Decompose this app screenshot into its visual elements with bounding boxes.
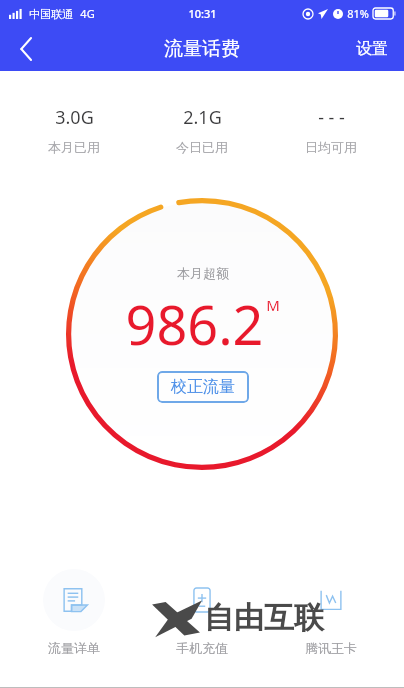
- staticText: 校正流量: [171, 377, 235, 397]
- staticText: 流量话费: [164, 37, 240, 61]
- button[interactable]: 手机充值: [147, 568, 257, 654]
- button[interactable]: Back: [0, 26, 52, 71]
- staticText: 自由互联: [204, 599, 324, 637]
- staticText: 10:31: [188, 6, 217, 21]
- button[interactable]: 腾讯王卡: [276, 568, 386, 654]
- button[interactable]: - - -: [276, 103, 386, 157]
- button[interactable]: 3.0G: [19, 103, 129, 157]
- staticText: 986.2: [125, 287, 264, 361]
- button[interactable]: 流量详单: [19, 568, 129, 654]
- staticText: 腾讯王卡: [305, 640, 357, 654]
- staticText: 设置: [356, 39, 388, 59]
- staticText: 3.0G: [55, 105, 94, 130]
- button[interactable]: 2.1G: [147, 103, 257, 157]
- staticText: 日均可用: [305, 139, 357, 155]
- staticText: M: [266, 295, 280, 315]
- staticText: - - -: [318, 105, 345, 130]
- button[interactable]: 校正流量: [157, 371, 249, 403]
- staticText: 本月已用: [48, 139, 100, 155]
- staticText: 本月超额: [177, 265, 229, 281]
- staticText: 81%: [347, 6, 369, 21]
- staticText: 流量详单: [48, 640, 100, 654]
- staticText: 4G: [80, 6, 95, 21]
- staticText: 手机充值: [176, 640, 228, 654]
- button[interactable]: 设置: [340, 26, 404, 71]
- staticText: 今日已用: [176, 139, 228, 155]
- staticText: 2.1G: [183, 105, 222, 130]
- staticText: 中国联通: [29, 7, 73, 21]
